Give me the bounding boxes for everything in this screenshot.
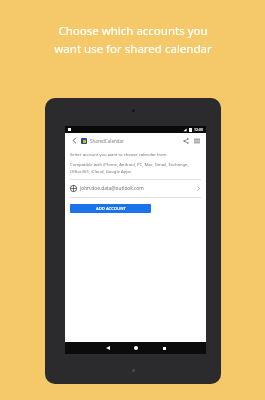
staticText: want use for shared calendar bbox=[54, 41, 212, 57]
button[interactable]: Recent apps bbox=[157, 342, 171, 354]
button[interactable]: john.doe.data@outlook.com bbox=[70, 180, 201, 197]
staticText: SharedCalendar bbox=[90, 138, 124, 144]
staticText: Choose which accounts you bbox=[58, 23, 208, 39]
staticText: Select account you want to choose calend… bbox=[70, 152, 168, 158]
button[interactable]: ADD ACCOUNT bbox=[70, 204, 151, 213]
staticText: Compatible with iPhone, Android, PC, Mac… bbox=[70, 162, 201, 174]
button[interactable]: Share bbox=[180, 135, 191, 146]
button[interactable]: Home bbox=[129, 342, 143, 354]
button[interactable]: Back bbox=[101, 342, 115, 354]
button[interactable]: Back bbox=[69, 135, 80, 146]
staticText: 12:00 bbox=[194, 127, 203, 132]
button[interactable]: Menu bbox=[191, 135, 202, 146]
staticText: john.doe.data@outlook.com bbox=[80, 185, 144, 192]
staticText: ADD ACCOUNT bbox=[96, 206, 126, 212]
